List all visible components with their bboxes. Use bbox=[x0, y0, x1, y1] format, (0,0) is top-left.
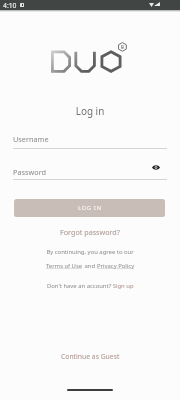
staticText: Continue as Guest bbox=[61, 352, 120, 361]
staticText: Privacy Policy bbox=[97, 262, 135, 270]
button[interactable]: LOG IN bbox=[14, 199, 165, 217]
staticText: 4:10 bbox=[3, 1, 17, 10]
button[interactable]: Terms of Use bbox=[46, 262, 83, 270]
staticText: Username bbox=[13, 134, 49, 144]
staticText: Log in bbox=[0, 104, 180, 117]
staticText: LOG IN bbox=[78, 204, 102, 212]
staticText: Don't have an account? Sign up bbox=[47, 282, 134, 290]
staticText: Forgot password? bbox=[60, 227, 120, 237]
staticText: and bbox=[83, 262, 97, 270]
button[interactable]: Forgot password? bbox=[60, 227, 120, 237]
button[interactable]: Privacy Policy bbox=[97, 262, 135, 270]
staticText: Terms of Use bbox=[46, 262, 83, 270]
button[interactable]: Show password bbox=[150, 162, 161, 173]
button[interactable]: Continue as Guest bbox=[61, 352, 120, 361]
staticText: By continuing, you agree to our bbox=[0, 248, 180, 256]
staticText: Password bbox=[13, 167, 47, 177]
button[interactable]: Don't have an account? Sign up bbox=[47, 282, 134, 290]
